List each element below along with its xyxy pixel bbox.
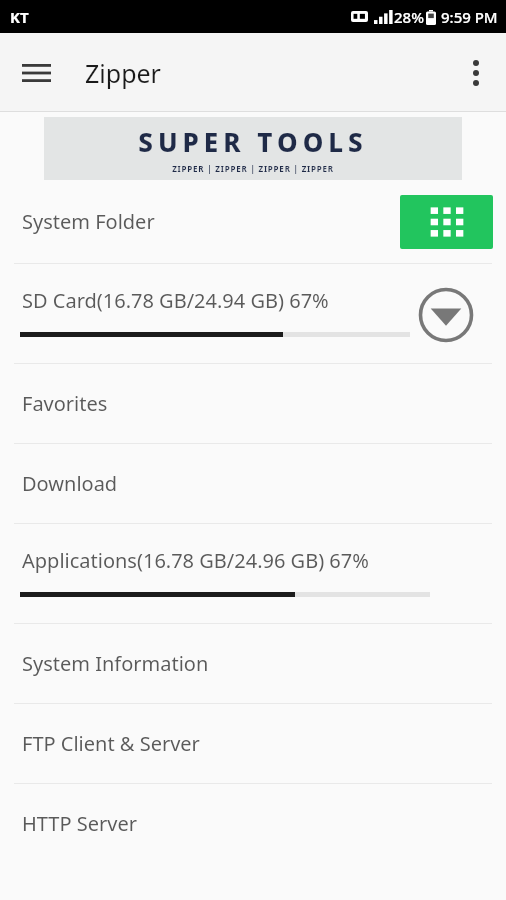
button[interactable]: Download — [0, 444, 506, 523]
button[interactable]: HTTP Server — [0, 784, 506, 863]
button[interactable]: FTP Client & Server — [0, 704, 506, 783]
staticText: KT — [10, 7, 29, 27]
button[interactable]: App grid — [400, 195, 493, 249]
button[interactable]: Applications(16.78 GB/24.96 GB) 67% — [0, 524, 506, 623]
button[interactable]: More options — [454, 51, 498, 95]
staticText: ZIPPER | ZIPPER | ZIPPER | ZIPPER — [172, 163, 334, 174]
staticText: Zipper — [85, 56, 161, 90]
button[interactable]: SUPER TOOLS — [44, 117, 462, 180]
staticText: 9:59 PM — [441, 7, 498, 27]
staticText: Applications(16.78 GB/24.96 GB) 67% — [22, 547, 369, 574]
staticText: HTTP Server — [22, 810, 137, 837]
button[interactable]: Open navigation menu — [14, 51, 58, 95]
staticText: Download — [22, 470, 118, 497]
button[interactable]: Favorites — [0, 364, 506, 443]
button[interactable]: SD Card(16.78 GB/24.94 GB) 67% — [0, 264, 506, 363]
staticText: Favorites — [22, 390, 108, 417]
staticText: System Folder — [22, 208, 155, 235]
staticText: System Information — [22, 650, 209, 677]
button[interactable]: Expand SD Card — [418, 287, 474, 343]
button[interactable]: System Information — [0, 624, 506, 703]
button[interactable]: System Folder — [0, 180, 506, 263]
staticText: FTP Client & Server — [22, 730, 200, 757]
staticText: SUPER TOOLS — [138, 124, 368, 159]
staticText: 28% — [394, 7, 424, 27]
staticText: SD Card(16.78 GB/24.94 GB) 67% — [22, 287, 329, 314]
